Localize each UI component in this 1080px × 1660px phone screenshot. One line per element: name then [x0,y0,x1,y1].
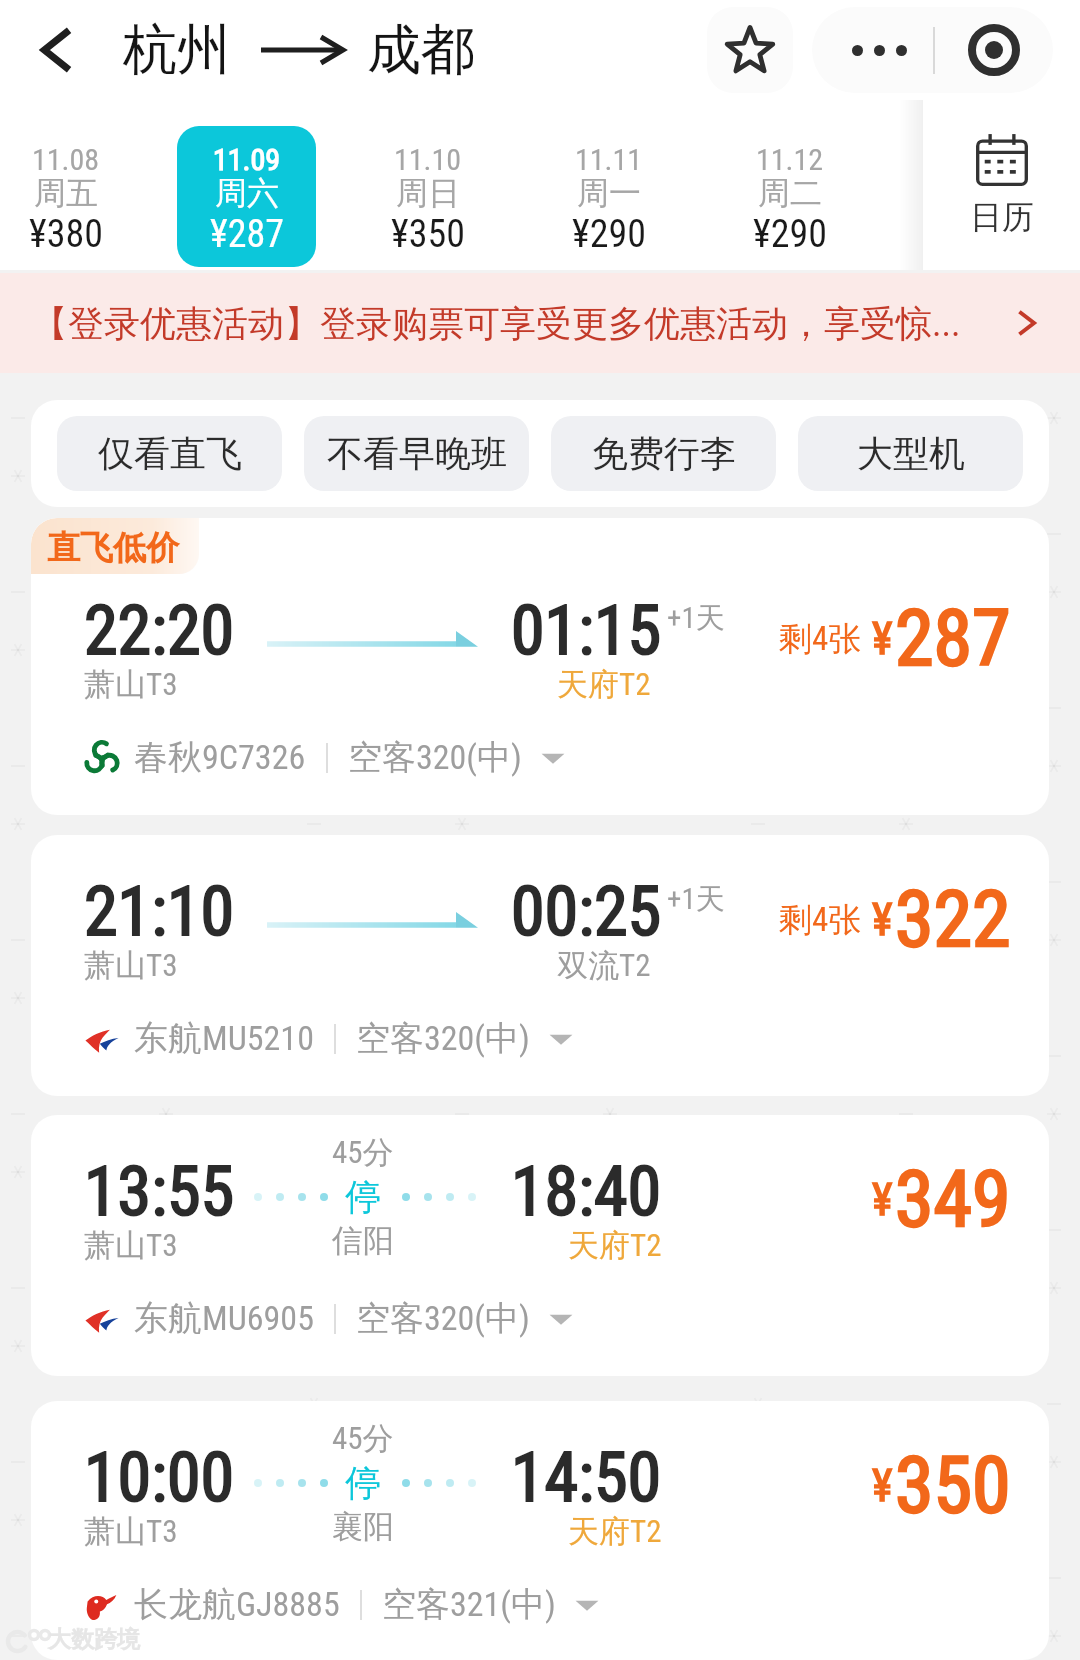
staticText: 萧山T3 [84,1512,178,1551]
staticText: 21:10 [84,872,235,952]
staticText: 01:15 [511,591,662,671]
button[interactable]: 11.12 [720,126,859,267]
button[interactable]: 大型机 [798,416,1023,491]
staticText: ¥ [872,613,893,665]
staticText: ¥290 [572,212,646,257]
staticText: 18:40 [511,1152,662,1232]
button[interactable]: Back [14,10,94,90]
staticText: ¥287 [210,212,284,257]
staticText: ¥350 [391,212,465,257]
staticText: 春秋9C7326 [134,736,306,779]
staticText: 空客320(中) [356,1297,530,1340]
staticText: 仅看直飞 [98,431,242,476]
staticText: 大型机 [857,431,965,476]
staticText: 剩4张 [779,899,862,941]
button[interactable]: 11.10 [358,126,497,267]
staticText: 周二 [758,173,822,213]
button[interactable]: 11.08 [0,126,135,267]
staticText: 45分 [332,1133,394,1172]
staticText: 直飞低价 [47,527,179,569]
staticText: 空客320(中) [356,1017,530,1060]
staticText: 天府T2 [568,1226,662,1265]
button[interactable]: 10:00 [31,1401,1049,1660]
staticText: 天府T2 [568,1512,662,1551]
staticText: +1天 [667,600,725,637]
staticText: 00:25 [511,872,662,952]
staticText: 10:00 [84,1438,235,1518]
staticText: 东航MU6905 [134,1297,314,1340]
staticText: 周日 [396,173,460,213]
staticText: 11.10 [394,142,462,177]
staticText: 成都 [367,16,475,84]
staticText: 11.09 [213,142,281,177]
staticText: ¥290 [753,212,827,257]
button[interactable]: 13:55 [31,1115,1049,1376]
staticText: 周五 [34,173,98,213]
staticText: 杭州 [123,16,231,84]
button[interactable]: 11.11 [539,126,678,267]
staticText: 322 [895,874,1011,965]
button[interactable]: 【登录优惠活动】登录购票可享受更多优惠活动，享受惊... [0,273,1080,373]
staticText: 萧山T3 [84,946,178,985]
staticText: 14:50 [511,1438,662,1518]
button[interactable]: More options [812,7,933,93]
staticText: 双流T2 [557,946,651,985]
staticText: 45分 [332,1419,394,1458]
button[interactable]: Target location [935,7,1053,93]
button[interactable]: Favorite [707,7,793,93]
staticText: 11.12 [756,142,824,177]
staticText: ¥ [872,1460,893,1512]
staticText: ¥ [872,1174,893,1226]
staticText: 天府T2 [557,665,651,704]
staticText: 不看早晚班 [327,431,507,476]
staticText: 287 [895,593,1011,684]
staticText: ¥ [872,894,893,946]
staticText: 襄阳 [332,1507,394,1546]
staticText: 萧山T3 [84,1226,178,1265]
button[interactable]: 仅看直飞 [57,416,282,491]
staticText: 周六 [215,173,279,213]
button[interactable]: 不看早晚班 [304,416,529,491]
button[interactable]: 直飞低价 [31,518,1049,815]
staticText: 349 [895,1154,1011,1245]
staticText: 信阳 [332,1221,394,1260]
staticText: 东航MU5210 [134,1017,314,1060]
staticText: 350 [895,1440,1011,1531]
button[interactable]: 11.09 [177,126,316,267]
staticText: 【登录优惠活动】登录购票可享受更多优惠活动，享受惊... [32,301,1019,346]
staticText: 空客321(中) [382,1583,556,1626]
staticText: 长龙航GJ8885 [134,1583,340,1626]
staticText: 13:55 [84,1152,235,1232]
staticText: 周一 [577,173,641,213]
staticText: +1天 [667,881,725,918]
staticText: 11.11 [575,142,643,177]
staticText: 萧山T3 [84,665,178,704]
staticText: 剩4张 [779,618,862,660]
staticText: ¥380 [29,212,103,257]
staticText: 停 [345,1460,381,1505]
staticText: 停 [345,1174,381,1219]
staticText: 11.08 [32,142,100,177]
button[interactable]: 21:10 [31,835,1049,1096]
staticText: 大数跨境 [48,1625,140,1654]
staticText: 空客320(中) [348,736,522,779]
staticText: 免费行李 [592,431,736,476]
button[interactable]: 日历 [923,100,1080,270]
staticText: 22:20 [84,591,235,671]
staticText: 日历 [970,197,1034,237]
button[interactable]: 免费行李 [551,416,776,491]
